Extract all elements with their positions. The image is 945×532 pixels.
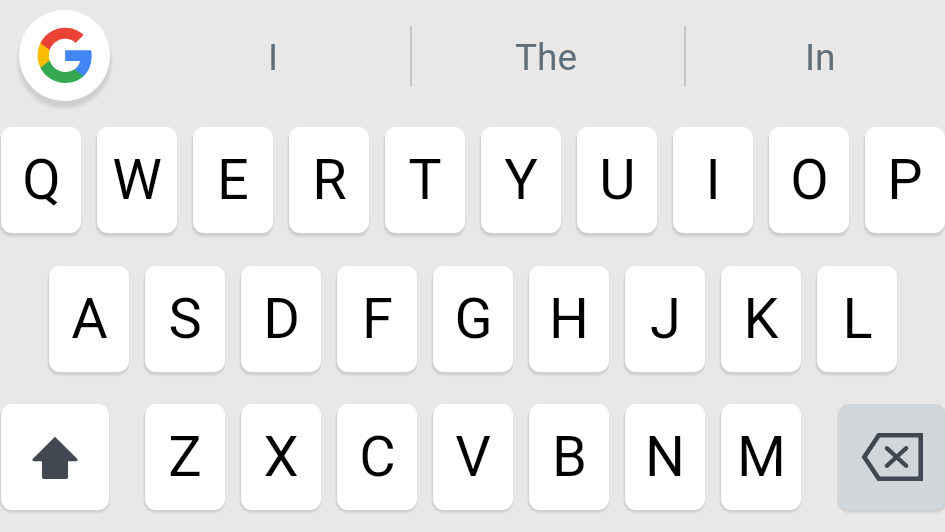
staticText: Z <box>168 424 202 490</box>
button[interactable]: J <box>625 266 705 372</box>
button[interactable]: F <box>337 266 417 372</box>
staticText: W <box>112 147 162 213</box>
button[interactable]: S <box>145 266 225 372</box>
button[interactable]: The <box>410 0 683 115</box>
staticText: V <box>455 424 491 490</box>
staticText: The <box>515 36 578 79</box>
staticText: E <box>217 147 249 213</box>
staticText: N <box>645 424 685 490</box>
staticText: I <box>268 36 279 79</box>
staticText: B <box>552 424 587 490</box>
button[interactable]: G <box>433 266 513 372</box>
staticText: G <box>454 286 493 352</box>
button[interactable]: K <box>721 266 801 372</box>
staticText: H <box>549 286 589 352</box>
staticText: Y <box>504 147 538 213</box>
staticText: C <box>359 424 396 490</box>
button[interactable]: Z <box>145 404 225 510</box>
staticText: U <box>599 147 636 213</box>
staticText: L <box>842 286 873 352</box>
button[interactable]: A <box>49 266 129 372</box>
button[interactable]: P <box>865 127 945 233</box>
button[interactable]: T <box>385 127 465 233</box>
button[interactable]: H <box>529 266 609 372</box>
staticText: F <box>362 286 393 352</box>
button[interactable]: L <box>817 266 897 372</box>
staticText: K <box>743 286 779 352</box>
staticText: M <box>737 424 786 490</box>
button[interactable]: E <box>193 127 273 233</box>
button[interactable]: O <box>769 127 849 233</box>
button[interactable]: N <box>625 404 705 510</box>
button[interactable]: R <box>289 127 369 233</box>
button[interactable]: Google <box>19 10 110 101</box>
button[interactable]: In <box>684 0 945 115</box>
staticText: J <box>650 286 681 352</box>
button[interactable]: Backspace <box>838 404 945 510</box>
button[interactable]: Q <box>1 127 81 233</box>
button[interactable]: D <box>241 266 321 372</box>
staticText: A <box>71 286 108 352</box>
staticText: R <box>312 147 347 213</box>
button[interactable]: Shift <box>1 404 109 510</box>
button[interactable]: C <box>337 404 417 510</box>
staticText: T <box>408 147 442 213</box>
button[interactable]: I <box>137 0 410 115</box>
button[interactable]: M <box>721 404 801 510</box>
staticText: O <box>790 147 829 213</box>
button[interactable]: U <box>577 127 657 233</box>
button[interactable]: B <box>529 404 609 510</box>
staticText: P <box>887 147 923 213</box>
button[interactable]: X <box>241 404 321 510</box>
staticText: X <box>263 424 299 490</box>
staticText: D <box>263 286 300 352</box>
button[interactable]: V <box>433 404 513 510</box>
button[interactable]: Y <box>481 127 561 233</box>
staticText: Q <box>22 147 61 213</box>
button[interactable]: I <box>673 127 753 233</box>
staticText: I <box>705 147 721 213</box>
button[interactable]: W <box>97 127 177 233</box>
staticText: In <box>805 36 836 79</box>
staticText: S <box>168 286 202 352</box>
